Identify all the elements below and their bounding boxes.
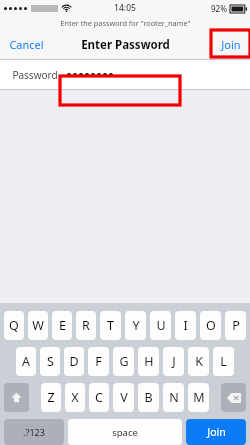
staticText: Q [9, 317, 19, 334]
button[interactable]: Cancel [0, 30, 53, 59]
button[interactable]: space [68, 419, 182, 445]
button[interactable]: O [200, 311, 221, 340]
staticText: U [156, 317, 166, 334]
button[interactable]: Q [4, 311, 24, 340]
staticText: H [144, 353, 154, 370]
button[interactable] [67, 60, 115, 89]
staticText: O [206, 317, 216, 334]
staticText: 92% [211, 3, 227, 14]
staticText: I [183, 317, 188, 334]
staticText: C [95, 389, 103, 406]
button[interactable]: K [188, 347, 209, 376]
staticText: Join [207, 425, 226, 439]
button[interactable]: D [64, 347, 84, 376]
button[interactable]: Backspace [221, 383, 246, 412]
staticText: Join [221, 37, 241, 52]
button[interactable]: Join [212, 30, 250, 59]
button[interactable]: W [28, 311, 48, 340]
button[interactable]: Y [125, 311, 146, 340]
button[interactable]: V [113, 383, 134, 412]
button[interactable]: F [88, 347, 109, 376]
button[interactable]: J [163, 347, 184, 376]
button[interactable]: C [89, 383, 109, 412]
staticText: R [82, 317, 90, 334]
staticText: G [119, 353, 129, 370]
button[interactable]: G [113, 347, 134, 376]
staticText: Y [132, 317, 140, 334]
staticText: Z [47, 389, 55, 406]
staticText: X [71, 389, 79, 406]
staticText: .?123 [23, 426, 45, 438]
staticText: L [220, 353, 227, 370]
staticText: K [195, 353, 203, 370]
staticText: B [144, 389, 153, 406]
staticText: Enter Password [81, 37, 170, 53]
button[interactable]: I [175, 311, 196, 340]
staticText: A [22, 353, 30, 370]
staticText: Enter the password for "rooter_name" [60, 18, 191, 28]
staticText: E [59, 317, 66, 334]
button[interactable]: H [138, 347, 159, 376]
staticText: S [47, 353, 54, 370]
staticText: space [112, 426, 138, 439]
staticText: Password [12, 68, 58, 82]
staticText: W [32, 317, 44, 334]
button[interactable]: P [225, 311, 246, 340]
button[interactable]: L [213, 347, 234, 376]
button[interactable]: Z [41, 383, 61, 412]
staticText: Cancel [9, 37, 44, 52]
staticText: J [172, 353, 176, 370]
button[interactable]: U [150, 311, 171, 340]
button[interactable]: Shift [4, 383, 29, 412]
button[interactable]: N [163, 383, 184, 412]
button[interactable]: .?123 [4, 419, 64, 445]
staticText: F [95, 353, 102, 370]
button[interactable]: S [40, 347, 60, 376]
staticText: N [169, 389, 179, 406]
button[interactable]: X [65, 383, 85, 412]
staticText: T [107, 317, 114, 334]
staticText: V [120, 389, 128, 406]
staticText: 14:05 [114, 2, 136, 14]
button[interactable]: Join [186, 419, 246, 445]
button[interactable]: M [188, 383, 209, 412]
staticText: M [193, 389, 205, 406]
button[interactable]: E [52, 311, 72, 340]
button[interactable]: T [100, 311, 121, 340]
button[interactable]: R [76, 311, 96, 340]
button[interactable]: B [138, 383, 159, 412]
staticText: P [232, 317, 240, 334]
button[interactable]: A [16, 347, 36, 376]
staticText: D [69, 353, 79, 370]
